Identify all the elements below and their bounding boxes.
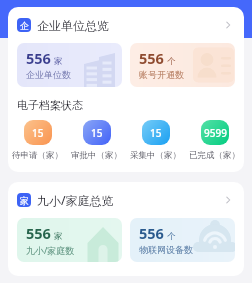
button[interactable]: 15	[8, 120, 67, 161]
staticText: 个	[167, 56, 176, 67]
button[interactable]: 15	[67, 120, 126, 161]
button[interactable]: 556	[17, 218, 122, 262]
staticText: 个	[167, 231, 176, 242]
staticText: 9599	[204, 126, 227, 140]
button[interactable]: 556	[130, 43, 235, 87]
staticText: 556	[26, 48, 51, 68]
staticText: 556	[26, 223, 51, 243]
button[interactable]: 家	[8, 182, 244, 218]
staticText: 15	[91, 126, 103, 140]
other: View more	[221, 193, 235, 207]
staticText: 账号开通数	[139, 69, 184, 80]
staticText: 556	[139, 223, 164, 243]
staticText: 15	[150, 126, 162, 140]
staticText: 电子档案状态	[17, 98, 83, 112]
staticText: 企	[20, 20, 29, 31]
staticText: 九小/家庭数	[26, 244, 75, 256]
staticText: 已完成（家）	[189, 150, 240, 161]
staticText: 15	[32, 126, 44, 140]
staticText: 企业单位总览	[37, 18, 109, 33]
button[interactable]: 企	[8, 7, 244, 43]
button[interactable]: 9599	[185, 120, 244, 161]
button[interactable]: 15	[126, 120, 185, 161]
staticText: 采集中（家）	[130, 150, 181, 161]
button[interactable]: 556	[130, 218, 235, 262]
staticText: 家	[54, 56, 63, 67]
staticText: 物联网设备数	[139, 244, 193, 255]
staticText: 556	[139, 48, 164, 68]
staticText: 家	[54, 231, 63, 242]
staticText: 九小/家庭总览	[37, 192, 114, 208]
staticText: 企业单位数	[26, 69, 71, 80]
button[interactable]: 556	[17, 43, 122, 87]
staticText: 家	[20, 195, 29, 206]
staticText: 待申请（家）	[12, 150, 63, 161]
staticText: 审批中（家）	[71, 150, 122, 161]
other: View more	[221, 18, 235, 32]
